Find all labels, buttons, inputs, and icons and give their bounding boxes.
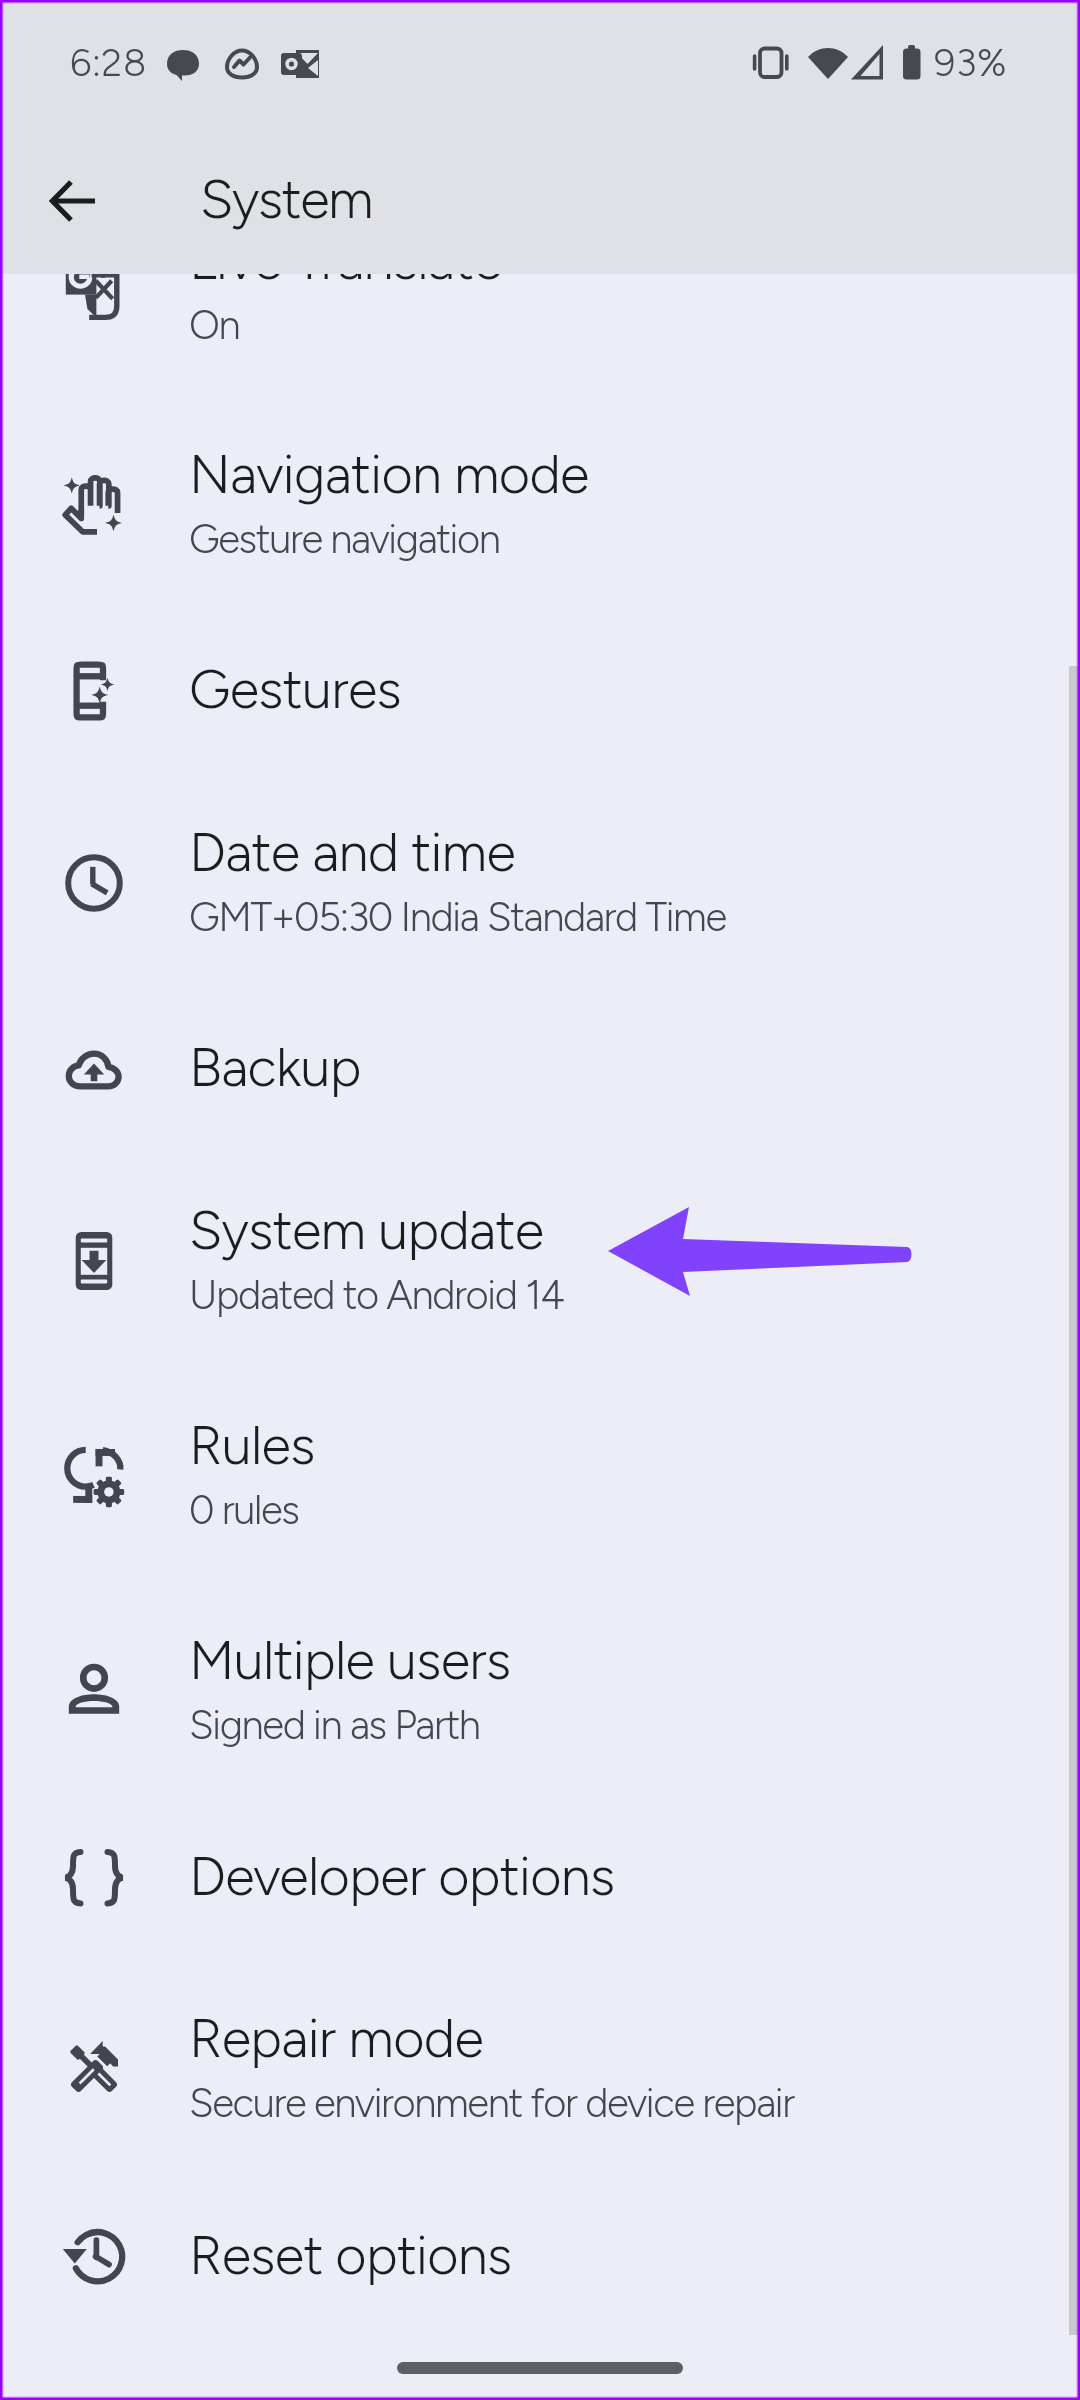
staticText: Gesture navigation (189, 515, 500, 563)
staticText: Backup (189, 1035, 361, 1100)
staticText: Repair mode (189, 2006, 484, 2071)
button[interactable]: Live Translate (0, 186, 1080, 396)
button[interactable]: Navigation mode (0, 400, 1080, 610)
button[interactable]: Multiple users (0, 1586, 1080, 1796)
staticText: Live Translate (189, 228, 502, 293)
button[interactable]: System update (0, 1156, 1080, 1366)
staticText: 6:28 (70, 40, 147, 86)
staticText: On (189, 301, 240, 349)
staticText: Reset options (189, 2223, 512, 2288)
button[interactable]: Back (25, 153, 121, 249)
staticText: 93% (934, 40, 1008, 86)
staticText: Navigation mode (189, 442, 589, 507)
staticText: Multiple users (189, 1628, 511, 1693)
staticText: GMT+05:30 India Standard Time (189, 893, 726, 941)
button[interactable]: Backup (0, 993, 1080, 1143)
staticText: System (200, 167, 373, 232)
button[interactable]: Rules (0, 1371, 1080, 1581)
button[interactable]: Developer options (0, 1802, 1080, 1952)
button[interactable]: Reset options (0, 2181, 1080, 2331)
button[interactable]: Date and time (0, 778, 1080, 988)
staticText: Developer options (189, 1844, 615, 1909)
staticText: Date and time (189, 820, 516, 885)
button[interactable]: Repair mode (0, 1964, 1080, 2174)
staticText: Signed in as Parth (189, 1701, 480, 1749)
button[interactable]: Gestures (0, 615, 1080, 765)
staticText: Updated to Android 14 (189, 1271, 564, 1319)
staticText: System update (189, 1198, 544, 1263)
staticText: Rules (189, 1413, 315, 1478)
staticText: 0 rules (189, 1486, 299, 1534)
staticText: Secure environment for device repair (189, 2079, 794, 2127)
staticText: Gestures (189, 657, 401, 722)
